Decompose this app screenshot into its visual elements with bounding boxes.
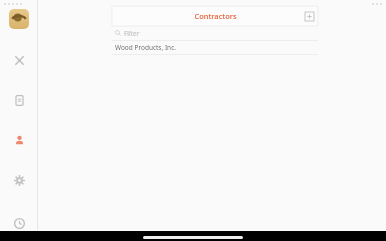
staticText: Filter: [124, 29, 140, 38]
button[interactable]: Settings: [8, 169, 30, 191]
button[interactable]: Wood Products, Inc.: [112, 41, 318, 54]
staticText: Contractors: [194, 11, 237, 21]
staticText: Wood Products, Inc.: [115, 43, 176, 52]
button[interactable]: Dashboard: [8, 49, 30, 71]
button[interactable]: Add contractor: [303, 10, 315, 22]
button[interactable]: Filter: [112, 26, 318, 40]
button[interactable]: History: [8, 216, 30, 231]
button[interactable]: Contractors: [8, 129, 30, 151]
button[interactable]: App logo: [9, 9, 29, 29]
button[interactable]: Documents: [8, 89, 30, 111]
